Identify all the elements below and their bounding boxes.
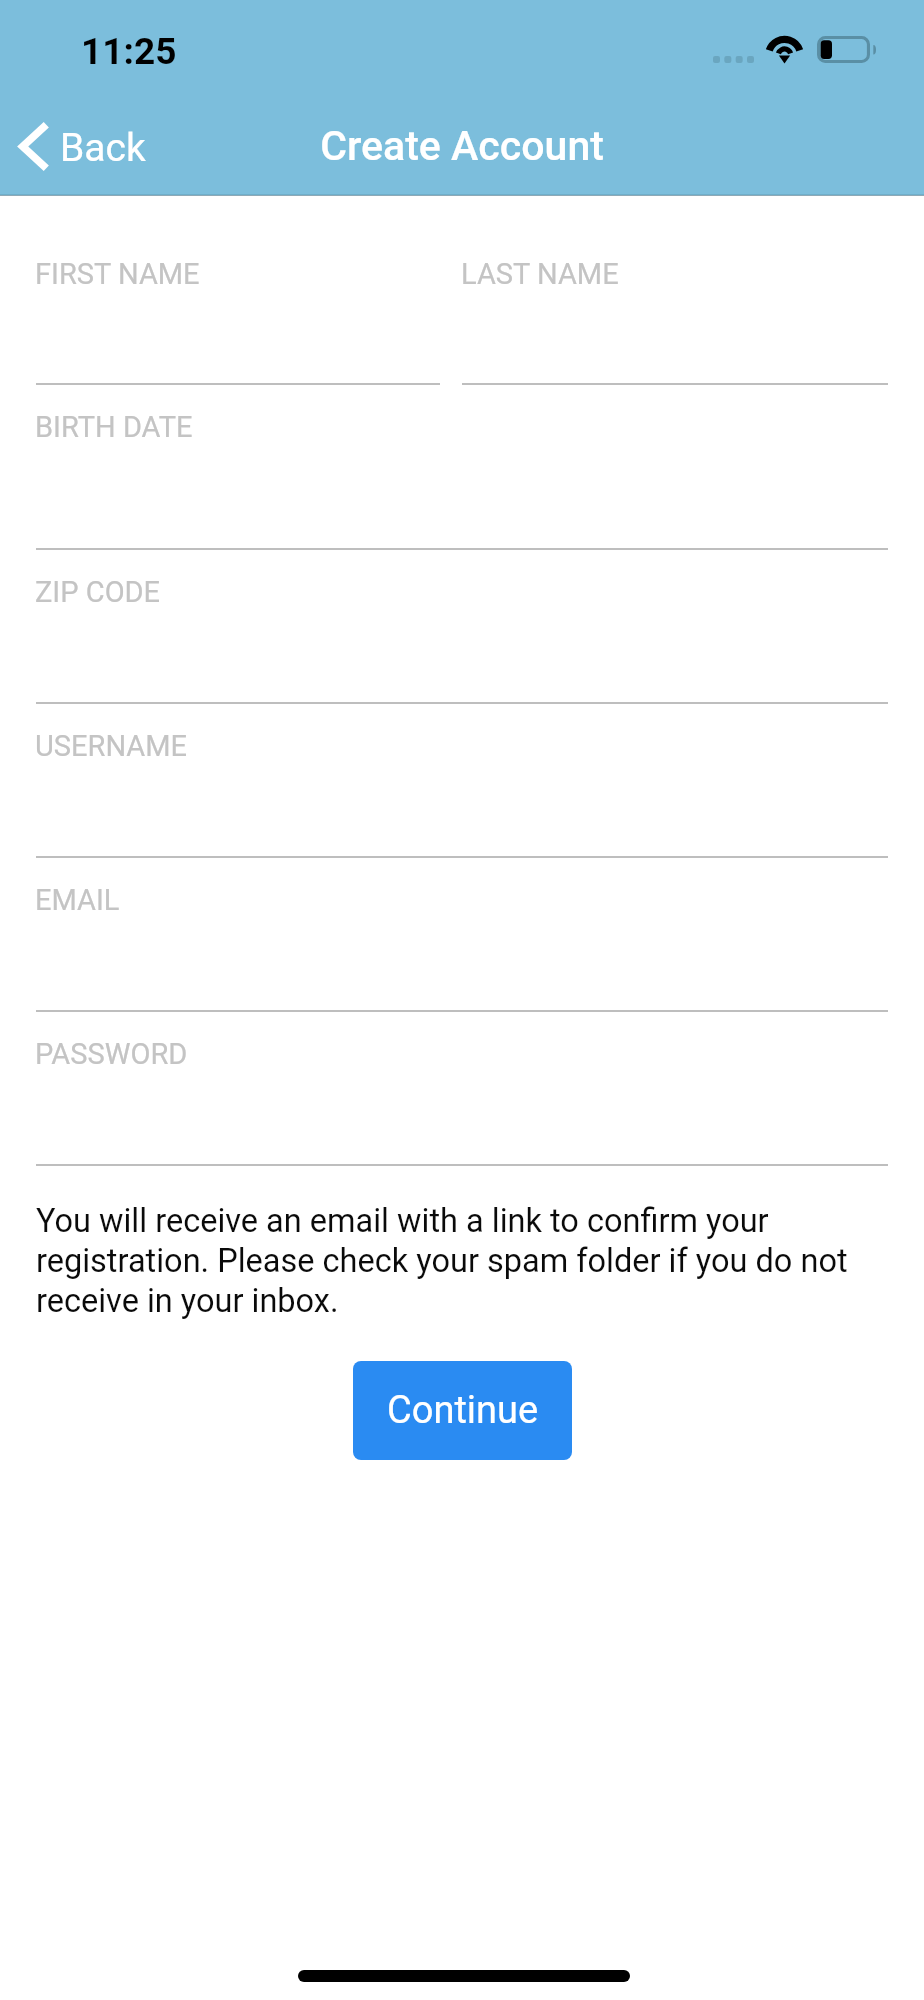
staticText: BIRTH DATE [35, 410, 193, 444]
staticText: You will receive an email with a link to… [36, 1202, 892, 1320]
button[interactable]: PASSWORD [36, 1012, 888, 1166]
staticText: Back [60, 125, 146, 171]
button[interactable]: Back [0, 100, 168, 196]
staticText: 11:25 [81, 30, 177, 73]
other: Wi-Fi [766, 35, 803, 64]
button[interactable]: ZIP CODE [36, 550, 888, 704]
staticText: USERNAME [35, 729, 188, 763]
staticText: Continue [387, 1388, 539, 1433]
button[interactable]: Continue [353, 1361, 572, 1460]
button[interactable]: FIRST NAME [36, 196, 440, 385]
button[interactable]: LAST NAME [462, 196, 888, 385]
button[interactable]: EMAIL [36, 858, 888, 1012]
staticText: FIRST NAME [35, 257, 200, 291]
button[interactable]: BIRTH DATE [36, 385, 888, 550]
other: Battery low [817, 36, 876, 63]
button[interactable]: USERNAME [36, 704, 888, 858]
other: Cellular signal [713, 56, 754, 63]
staticText: PASSWORD [35, 1037, 188, 1071]
staticText: LAST NAME [461, 257, 619, 291]
staticText: ZIP CODE [35, 575, 161, 609]
staticText: EMAIL [35, 883, 120, 917]
staticText: Create Account [0, 122, 924, 170]
